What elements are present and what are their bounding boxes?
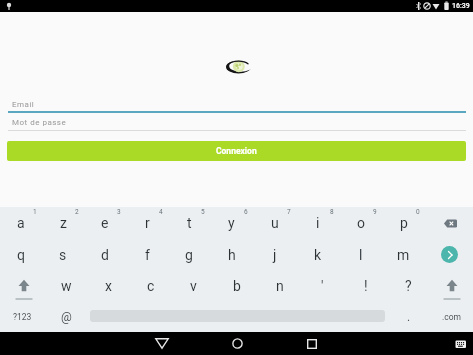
staticText: z: [60, 215, 67, 231]
button[interactable]: o: [339, 207, 382, 239]
button[interactable]: h: [210, 239, 253, 270]
staticText: j: [273, 247, 277, 263]
button[interactable]: b: [215, 270, 258, 301]
button[interactable]: [425, 207, 473, 239]
staticText: n: [276, 278, 284, 294]
staticText: k: [314, 247, 322, 263]
staticText: t: [187, 215, 192, 231]
staticText: 5: [201, 208, 205, 216]
staticText: a: [17, 215, 25, 231]
button[interactable]: q: [0, 239, 42, 270]
staticText: o: [357, 215, 365, 231]
button[interactable]: ?: [387, 270, 430, 301]
button[interactable]: ?123: [0, 301, 45, 332]
button[interactable]: u: [253, 207, 296, 239]
button[interactable]: @: [45, 301, 87, 332]
staticText: h: [228, 247, 236, 263]
button[interactable]: c: [129, 270, 172, 301]
staticText: ': [321, 278, 324, 294]
button[interactable]: l: [339, 239, 382, 270]
staticText: y: [228, 215, 235, 231]
button[interactable]: j: [253, 239, 296, 270]
button[interactable]: Email: [0, 98, 473, 113]
button[interactable]: Connexion: [7, 141, 466, 161]
staticText: 8: [330, 208, 334, 216]
staticText: 4: [159, 208, 163, 216]
button[interactable]: p: [382, 207, 425, 239]
staticText: .com: [442, 312, 461, 322]
staticText: Connexion: [216, 146, 257, 156]
button[interactable]: a: [0, 207, 42, 239]
staticText: i: [316, 215, 320, 231]
staticText: c: [147, 278, 155, 294]
staticText: u: [271, 215, 279, 231]
staticText: 3: [117, 208, 121, 216]
staticText: v: [190, 278, 197, 294]
staticText: d: [101, 247, 109, 263]
button[interactable]: s: [42, 239, 84, 270]
staticText: m: [397, 247, 410, 263]
button[interactable]: t: [168, 207, 210, 239]
staticText: b: [233, 278, 241, 294]
button[interactable]: Mot de passe: [0, 115, 473, 131]
button[interactable]: [430, 270, 473, 301]
button[interactable]: ': [301, 270, 344, 301]
button[interactable]: r: [126, 207, 168, 239]
staticText: 7: [287, 208, 291, 216]
button[interactable]: [0, 270, 45, 301]
staticText: ?: [405, 278, 412, 294]
button[interactable]: v: [172, 270, 215, 301]
button[interactable]: m: [382, 239, 425, 270]
button[interactable]: w: [45, 270, 87, 301]
staticText: .: [407, 310, 411, 324]
staticText: Email: [12, 100, 35, 109]
button[interactable]: [300, 332, 324, 355]
staticText: g: [185, 247, 193, 263]
button[interactable]: k: [296, 239, 339, 270]
staticText: @: [61, 310, 72, 324]
staticText: !: [364, 278, 368, 294]
staticText: l: [359, 247, 363, 263]
staticText: Mot de passe: [12, 118, 67, 127]
button[interactable]: g: [168, 239, 210, 270]
staticText: e: [101, 215, 109, 231]
button[interactable]: [150, 332, 174, 355]
button[interactable]: [225, 332, 249, 355]
staticText: ?123: [13, 312, 32, 322]
staticText: p: [400, 215, 408, 231]
button[interactable]: .: [388, 301, 430, 332]
button[interactable]: [87, 301, 388, 332]
staticText: 9: [373, 208, 377, 216]
button[interactable]: f: [126, 239, 168, 270]
button[interactable]: x: [87, 270, 129, 301]
button[interactable]: z: [42, 207, 84, 239]
button[interactable]: d: [84, 239, 126, 270]
staticText: r: [145, 215, 150, 231]
staticText: x: [105, 278, 112, 294]
staticText: w: [61, 278, 72, 294]
staticText: q: [17, 247, 25, 263]
staticText: 1: [33, 208, 37, 216]
button[interactable]: y: [210, 207, 253, 239]
staticText: 2: [75, 208, 79, 216]
button[interactable]: [425, 239, 473, 270]
staticText: 0: [416, 208, 420, 216]
staticText: 6: [244, 208, 248, 216]
staticText: s: [59, 247, 67, 263]
button[interactable]: i: [296, 207, 339, 239]
staticText: 16:39: [452, 2, 470, 10]
button[interactable]: n: [258, 270, 301, 301]
button[interactable]: .com: [430, 301, 473, 332]
button[interactable]: e: [84, 207, 126, 239]
button[interactable]: !: [344, 270, 387, 301]
staticText: f: [145, 247, 150, 263]
button[interactable]: [451, 337, 471, 353]
